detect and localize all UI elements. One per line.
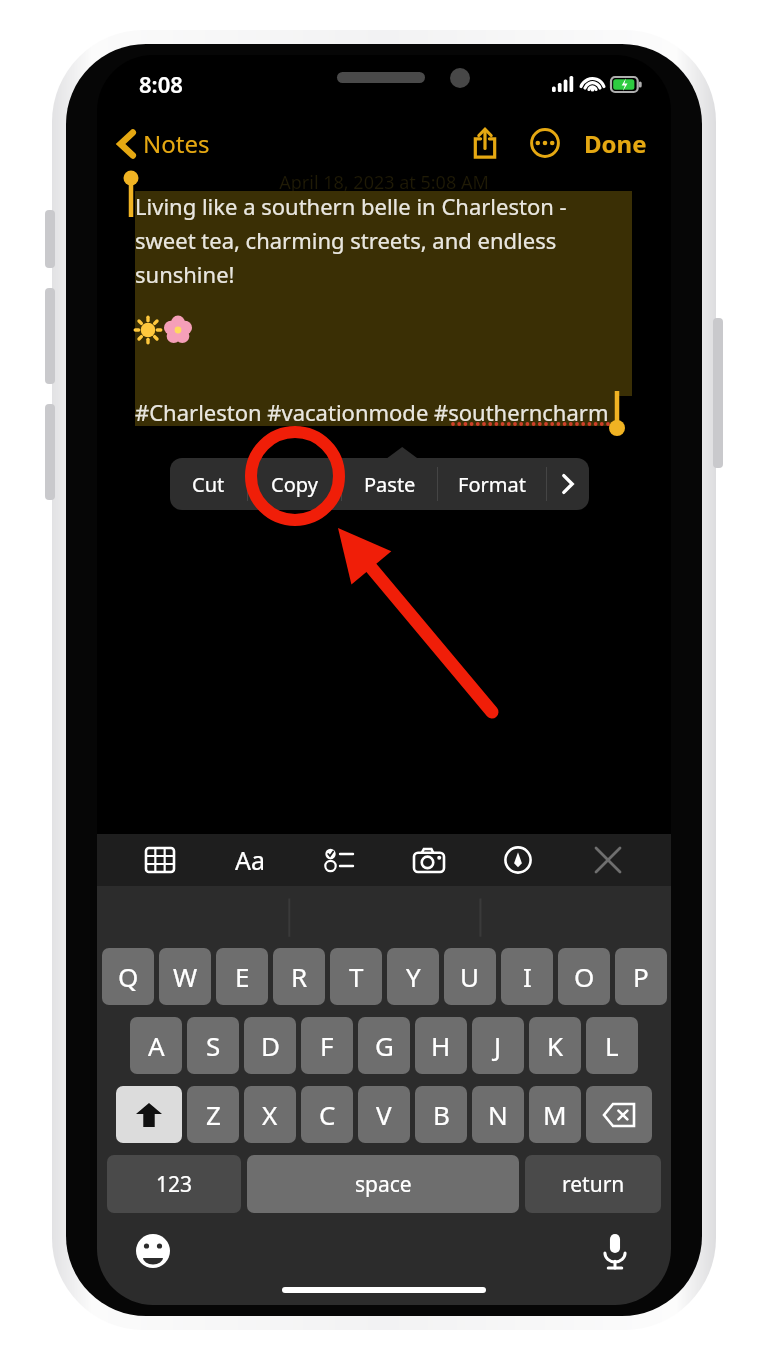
staticText: B (433, 1097, 450, 1132)
button[interactable]: Q (102, 948, 154, 1005)
button[interactable]: N (472, 1086, 524, 1143)
button[interactable]: X (244, 1086, 296, 1143)
staticText: A (148, 1028, 165, 1063)
staticText: C (319, 1097, 336, 1132)
button[interactable]: More options (522, 120, 568, 166)
button[interactable]: Backspace (586, 1086, 652, 1143)
button[interactable]: space (247, 1155, 519, 1213)
button[interactable]: Close keyboard (582, 834, 634, 886)
staticText: X (262, 1097, 278, 1132)
button[interactable]: Camera (403, 834, 455, 886)
button[interactable]: M (529, 1086, 581, 1143)
staticText: L (605, 1028, 619, 1063)
button[interactable]: Y (387, 948, 439, 1005)
button[interactable]: W (159, 948, 211, 1005)
button[interactable]: Format (438, 458, 546, 510)
staticText: N (488, 1097, 508, 1132)
button[interactable]: L (586, 1017, 638, 1074)
staticText: Done (584, 127, 647, 160)
button[interactable]: Table (134, 834, 186, 886)
staticText: V (376, 1097, 392, 1132)
staticText: Living like a southern belle in Charlest… (135, 191, 567, 289)
staticText: space (355, 1170, 412, 1199)
button[interactable]: Copy (248, 458, 341, 510)
button[interactable]: A (130, 1017, 182, 1074)
button[interactable]: Share (462, 120, 508, 166)
button[interactable]: C (301, 1086, 353, 1143)
staticText: R (291, 959, 308, 994)
staticText: J (494, 1028, 502, 1063)
staticText: P (633, 959, 649, 994)
staticText: G (375, 1028, 394, 1063)
button[interactable]: S (187, 1017, 239, 1074)
button[interactable]: 123 (107, 1155, 241, 1213)
button[interactable]: return (525, 1155, 661, 1213)
staticText: H (431, 1028, 451, 1063)
button[interactable]: Emoji (129, 1227, 177, 1275)
button[interactable]: K (529, 1017, 581, 1074)
staticText: M (543, 1097, 567, 1132)
staticText: T (349, 959, 364, 994)
button[interactable]: G (358, 1017, 410, 1074)
staticText: K (547, 1028, 564, 1063)
staticText: April 18, 2023 at 5:08 AM (97, 170, 671, 195)
staticText: O (574, 959, 595, 994)
button[interactable]: T (330, 948, 382, 1005)
button[interactable]: E (216, 948, 268, 1005)
button[interactable]: O (558, 948, 610, 1005)
button[interactable]: More (547, 458, 589, 510)
staticText: Z (206, 1097, 221, 1132)
button[interactable]: I (501, 948, 553, 1005)
staticText: Copy (271, 471, 318, 498)
button[interactable]: Shift (116, 1086, 182, 1143)
button[interactable]: Text format (224, 834, 276, 886)
button[interactable]: B (415, 1086, 467, 1143)
staticText: Notes (143, 127, 210, 160)
staticText: #Charleston #vacationmode #southerncharm (135, 397, 609, 427)
staticText: 8:08 (139, 69, 183, 99)
button[interactable]: H (415, 1017, 467, 1074)
staticText: 123 (156, 1170, 193, 1199)
staticText: F (320, 1028, 334, 1063)
button[interactable]: D (244, 1017, 296, 1074)
staticText: Aa (235, 843, 266, 877)
button[interactable]: U (444, 948, 496, 1005)
button[interactable]: P (615, 948, 667, 1005)
button[interactable]: Checklist (313, 834, 365, 886)
button[interactable]: Done (578, 121, 653, 166)
staticText: Y (406, 959, 421, 994)
button[interactable]: R (273, 948, 325, 1005)
button[interactable]: F (301, 1017, 353, 1074)
staticText: Q (118, 959, 139, 994)
button[interactable]: J (472, 1017, 524, 1074)
staticText: D (261, 1028, 280, 1063)
staticText: Cut (192, 471, 225, 498)
staticText: E (235, 959, 250, 994)
staticText: Paste (364, 471, 416, 498)
button[interactable]: Paste (342, 458, 437, 510)
staticText: S (206, 1028, 221, 1063)
button[interactable]: Cut (170, 458, 247, 510)
staticText: I (523, 959, 532, 994)
button[interactable]: Z (187, 1086, 239, 1143)
button[interactable]: Notes (113, 123, 216, 164)
staticText: return (562, 1170, 625, 1199)
button[interactable]: Dictation (591, 1227, 639, 1275)
staticText: U (460, 959, 480, 994)
staticText: Format (458, 471, 526, 498)
button[interactable]: Markup (492, 834, 544, 886)
button[interactable]: V (358, 1086, 410, 1143)
staticText: W (173, 959, 198, 994)
